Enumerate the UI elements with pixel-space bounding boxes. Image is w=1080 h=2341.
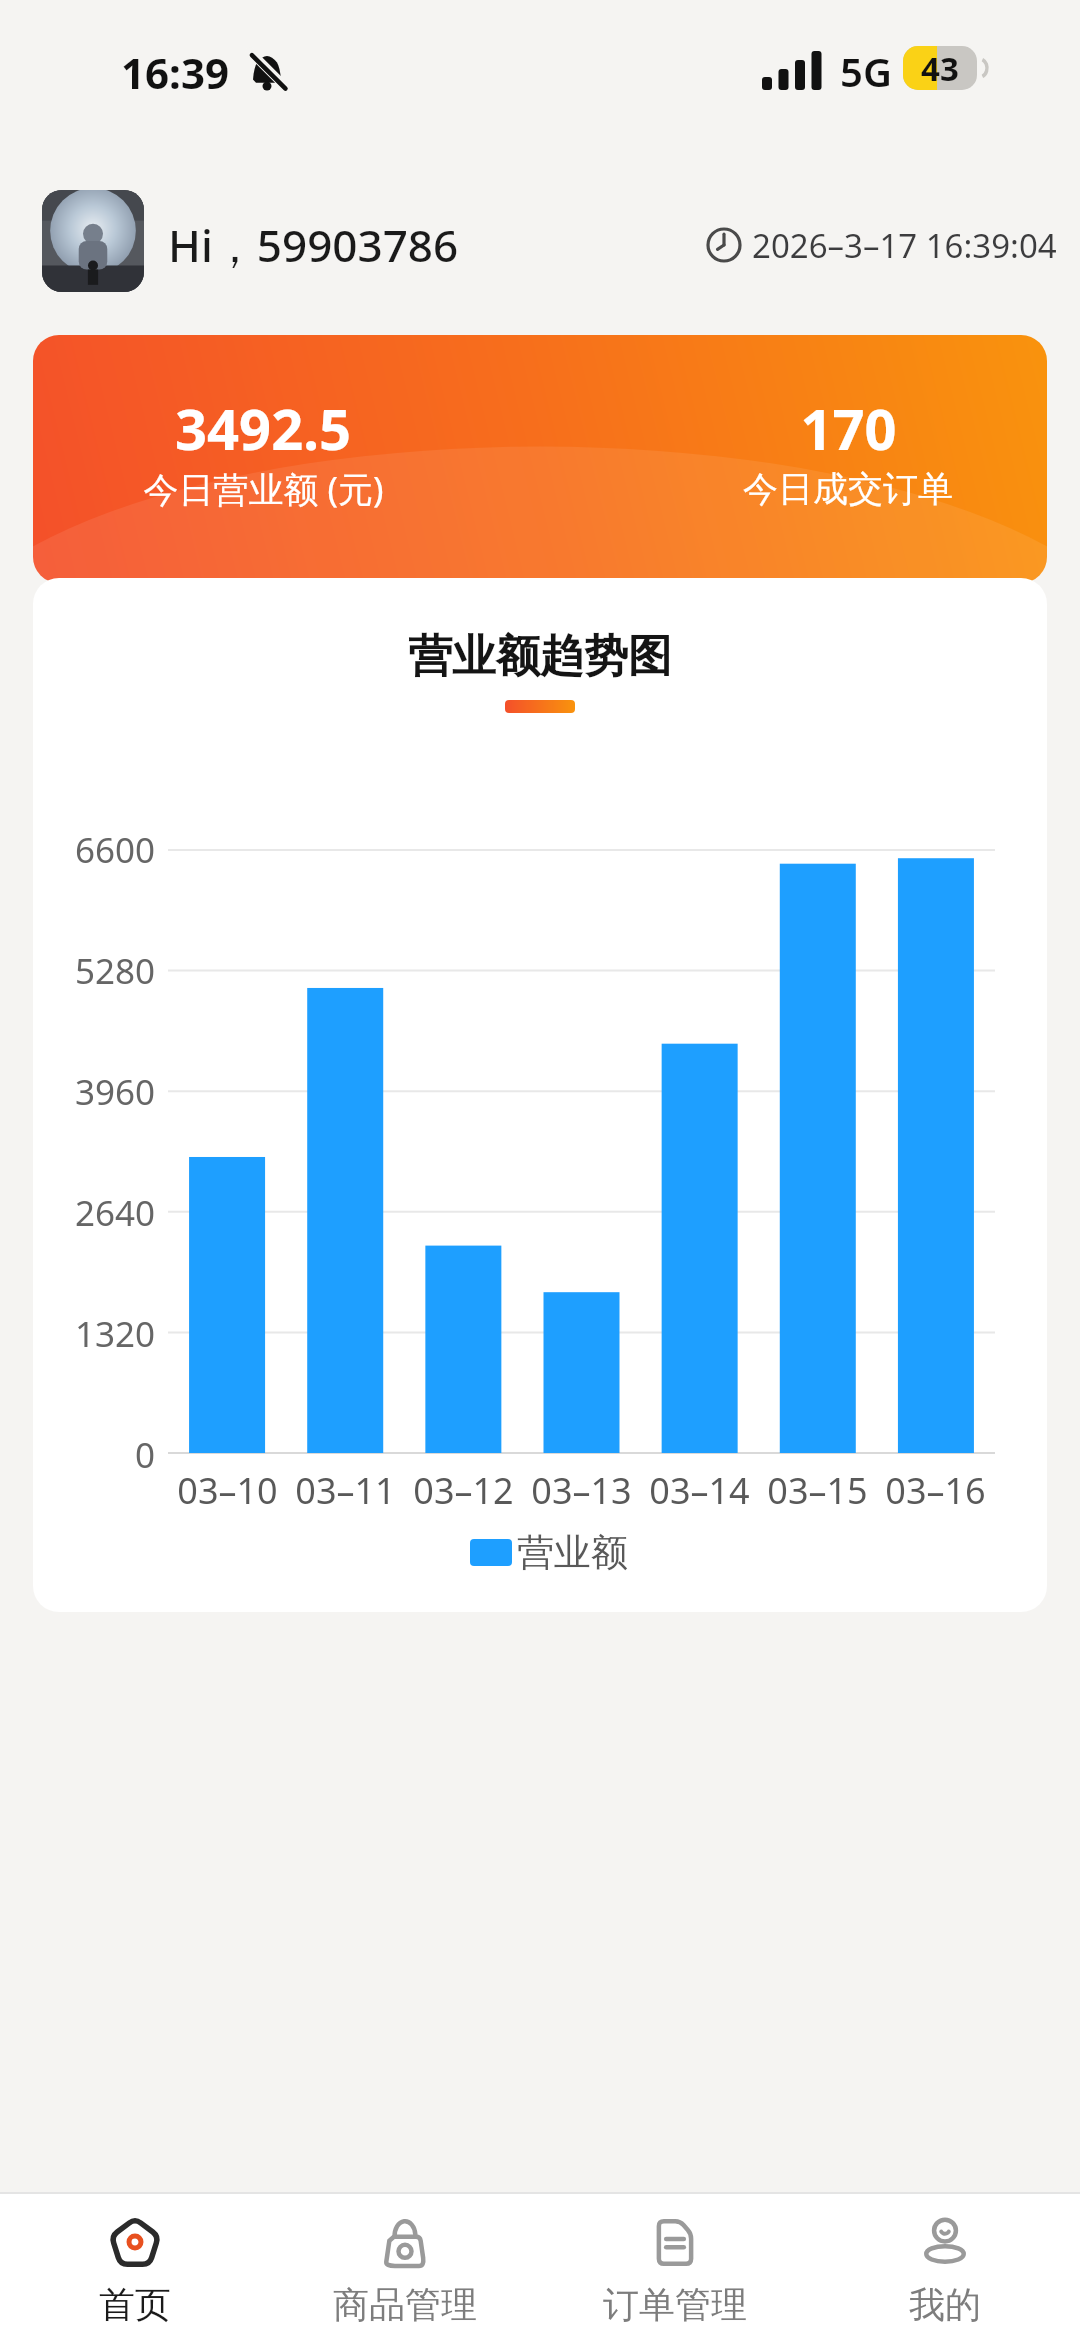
staticText: 03–11 — [295, 1466, 396, 1514]
staticText: 03–10 — [177, 1466, 278, 1514]
staticText: 6600 — [74, 826, 155, 874]
staticText: 03–14 — [649, 1466, 750, 1514]
button[interactable]: 订单管理 — [540, 2192, 810, 2341]
button[interactable] — [42, 190, 144, 292]
staticText: 今日成交订单 — [743, 467, 953, 511]
staticText: 03–16 — [885, 1466, 986, 1514]
staticText: 03–12 — [413, 1466, 514, 1514]
staticText: 营业额趋势图 — [408, 629, 672, 684]
staticText: 170 — [800, 390, 897, 460]
staticText: 营业额 — [517, 1529, 628, 1576]
staticText: 商品管理 — [333, 2282, 477, 2327]
button[interactable]: 3492.5 — [33, 335, 1047, 583]
staticText: 03–15 — [767, 1466, 868, 1514]
staticText: 3492.5 — [175, 390, 351, 460]
staticText: 2026–3–17 16:39:04 — [752, 223, 1057, 268]
staticText: 首页 — [99, 2282, 171, 2327]
staticText: 5280 — [74, 947, 155, 995]
staticText: 今日营业额 (元) — [143, 465, 384, 513]
staticText: 我的 — [909, 2282, 981, 2327]
button[interactable]: 我的 — [810, 2192, 1080, 2341]
staticText: 3960 — [74, 1068, 155, 1116]
button[interactable]: 首页 — [0, 2192, 270, 2341]
staticText: 0 — [134, 1431, 155, 1479]
staticText: 1320 — [74, 1310, 155, 1358]
button[interactable]: 商品管理 — [270, 2192, 540, 2341]
staticText: 2640 — [74, 1189, 155, 1237]
staticText: 5G — [840, 44, 892, 96]
staticText: 订单管理 — [603, 2282, 747, 2327]
staticText: 43 — [921, 46, 959, 90]
staticText: 03–13 — [531, 1466, 632, 1514]
staticText: Hi，59903786 — [168, 215, 459, 271]
staticText: 16:39 — [121, 44, 229, 96]
